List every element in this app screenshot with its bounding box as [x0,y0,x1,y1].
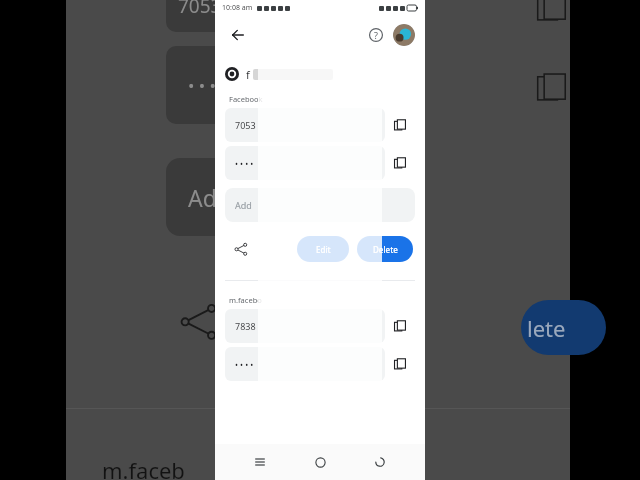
button[interactable]: Back [225,22,251,48]
button[interactable]: 7053 [225,108,385,142]
button[interactable]: Copy [385,349,415,379]
button[interactable]: • • • • [225,347,385,381]
button[interactable]: Account [393,24,415,46]
button[interactable]: Delete [357,236,413,262]
staticText: Edit [316,244,331,255]
staticText: m.facebo [229,295,262,305]
staticText: Delete [373,244,398,255]
staticText: lete [527,313,566,343]
staticText: Add [235,199,252,211]
staticText: 7053 [235,119,256,131]
button[interactable]: Copy [385,148,415,178]
button[interactable]: Recents [245,447,275,477]
button[interactable]: Add [225,188,415,222]
button[interactable]: Copy [385,110,415,140]
staticText: 7838 [235,320,256,332]
staticText: 10:08 am [222,3,253,13]
staticText: • • • • [235,359,254,370]
button[interactable]: Edit [297,236,349,262]
staticText: Add [188,182,231,213]
button[interactable]: Home [305,447,335,477]
staticText: Facebook [229,94,263,104]
staticText: • • • • [188,74,227,97]
staticText: ? [374,29,378,41]
staticText: 7053 [178,0,222,19]
button[interactable]: • • • • [225,146,385,180]
button[interactable]: 7838 [225,309,385,343]
button[interactable]: Share [227,235,255,263]
staticText: • • • • [235,158,254,169]
button[interactable]: Back [365,447,395,477]
button[interactable]: Copy [385,311,415,341]
staticText: f [246,67,250,82]
staticText: m.faceb [102,455,185,480]
button[interactable]: Help [363,22,389,48]
